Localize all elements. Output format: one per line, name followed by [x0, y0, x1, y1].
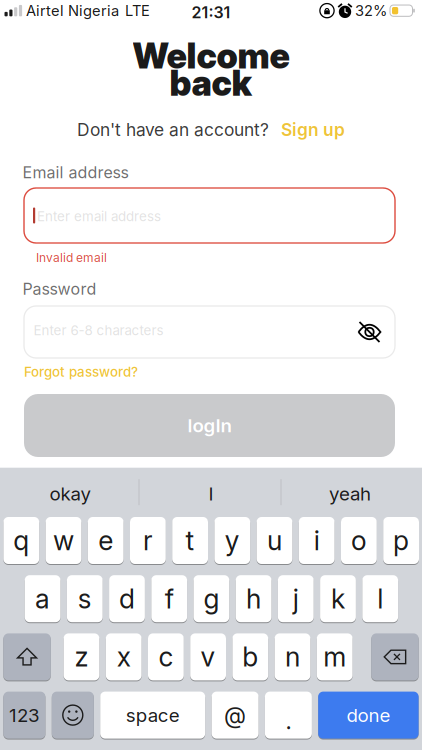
button[interactable]: okay [10, 474, 130, 514]
staticText: Password [22, 279, 96, 298]
staticText: g [203, 583, 219, 614]
staticText: Forgot password? [24, 364, 138, 380]
button[interactable]: I [151, 474, 271, 514]
staticText: x [117, 641, 131, 673]
button[interactable]: r [130, 517, 166, 564]
staticText: . [285, 708, 291, 734]
staticText: LTE [125, 2, 150, 19]
button[interactable]: @ [212, 692, 259, 739]
staticText: t [186, 525, 195, 556]
staticText: r [143, 525, 153, 556]
staticText: done [346, 704, 390, 726]
button[interactable]: d [109, 575, 145, 622]
button[interactable]: Show password [357, 322, 382, 342]
button[interactable]: n [275, 633, 310, 680]
staticText: Invalid email [36, 250, 107, 265]
button[interactable]: yeah [290, 474, 410, 514]
button[interactable]: i [299, 517, 335, 564]
button[interactable]: p [383, 517, 419, 564]
staticText: q [13, 525, 29, 556]
staticText: Don't have an account? [77, 119, 269, 140]
staticText: n [285, 641, 300, 673]
staticText: z [74, 641, 88, 673]
staticText: e [98, 525, 113, 556]
staticText: Welcome [132, 35, 289, 76]
staticText: i [314, 525, 320, 556]
button[interactable]: t [172, 517, 208, 564]
button[interactable]: Forgot password? [24, 364, 138, 380]
staticText: b [242, 641, 258, 673]
button[interactable]: space [100, 692, 205, 739]
button[interactable]: g [193, 575, 229, 622]
staticText: Sign up [281, 119, 345, 140]
staticText: 32% [355, 2, 387, 19]
button[interactable]: Sign up [281, 119, 345, 140]
staticText: @ [224, 702, 246, 728]
button[interactable]: h [236, 575, 271, 622]
button[interactable]: c [148, 633, 184, 680]
button[interactable]: Enter email address [24, 188, 395, 243]
staticText: yeah [329, 483, 371, 505]
staticText: 21:31 [191, 3, 230, 22]
staticText: s [78, 583, 92, 614]
staticText: v [201, 641, 216, 673]
staticText: a [35, 583, 50, 614]
button[interactable]: Numbers [3, 692, 45, 739]
button[interactable]: Enter 6-8 characters [24, 306, 395, 358]
button[interactable]: a [25, 575, 60, 622]
button[interactable]: j [278, 575, 314, 622]
staticText: u [267, 525, 282, 556]
staticText: w [53, 525, 74, 556]
button[interactable]: . [265, 692, 312, 739]
staticText: okay [49, 483, 90, 505]
button[interactable]: b [232, 633, 268, 680]
staticText: logIn [187, 414, 231, 436]
staticText: l [377, 583, 383, 614]
button[interactable]: k [320, 575, 356, 622]
staticText: o [351, 525, 367, 556]
button[interactable]: o [341, 517, 377, 564]
button[interactable]: l [362, 575, 398, 622]
button[interactable]: z [64, 633, 99, 680]
staticText: Enter email address [37, 208, 161, 224]
button[interactable]: Shift [3, 633, 51, 680]
staticText: k [331, 583, 345, 614]
button[interactable]: v [190, 633, 226, 680]
staticText: Enter 6-8 characters [33, 322, 163, 338]
staticText: space [126, 704, 180, 726]
button[interactable]: done [318, 692, 419, 739]
staticText: j [293, 583, 299, 614]
button[interactable]: Delete [371, 633, 419, 680]
button[interactable]: m [317, 633, 353, 680]
button[interactable]: w [46, 517, 81, 564]
staticText: Airtel Nigeria [26, 2, 119, 19]
button[interactable]: Emoji [52, 692, 94, 739]
staticText: back [169, 63, 252, 103]
staticText: p [393, 525, 409, 556]
staticText: Email address [22, 163, 128, 182]
button[interactable]: f [151, 575, 187, 622]
button[interactable]: e [88, 517, 124, 564]
staticText: d [119, 583, 135, 614]
staticText: m [323, 641, 346, 673]
button[interactable]: x [106, 633, 142, 680]
button[interactable]: u [257, 517, 292, 564]
button[interactable]: q [3, 517, 39, 564]
staticText: I [208, 483, 213, 505]
staticText: c [158, 641, 173, 673]
staticText: y [225, 525, 240, 556]
button[interactable]: logIn [24, 394, 395, 457]
button[interactable]: s [67, 575, 103, 622]
staticText: 123 [9, 704, 40, 726]
button[interactable]: y [214, 517, 250, 564]
staticText: f [165, 583, 174, 614]
staticText: h [246, 583, 261, 614]
